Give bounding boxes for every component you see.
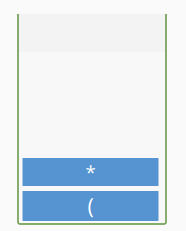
staticText: * — [85, 160, 95, 184]
button[interactable]: Moon — [22, 191, 158, 221]
button[interactable]: Star — [22, 158, 158, 186]
staticText: ( — [87, 192, 93, 220]
